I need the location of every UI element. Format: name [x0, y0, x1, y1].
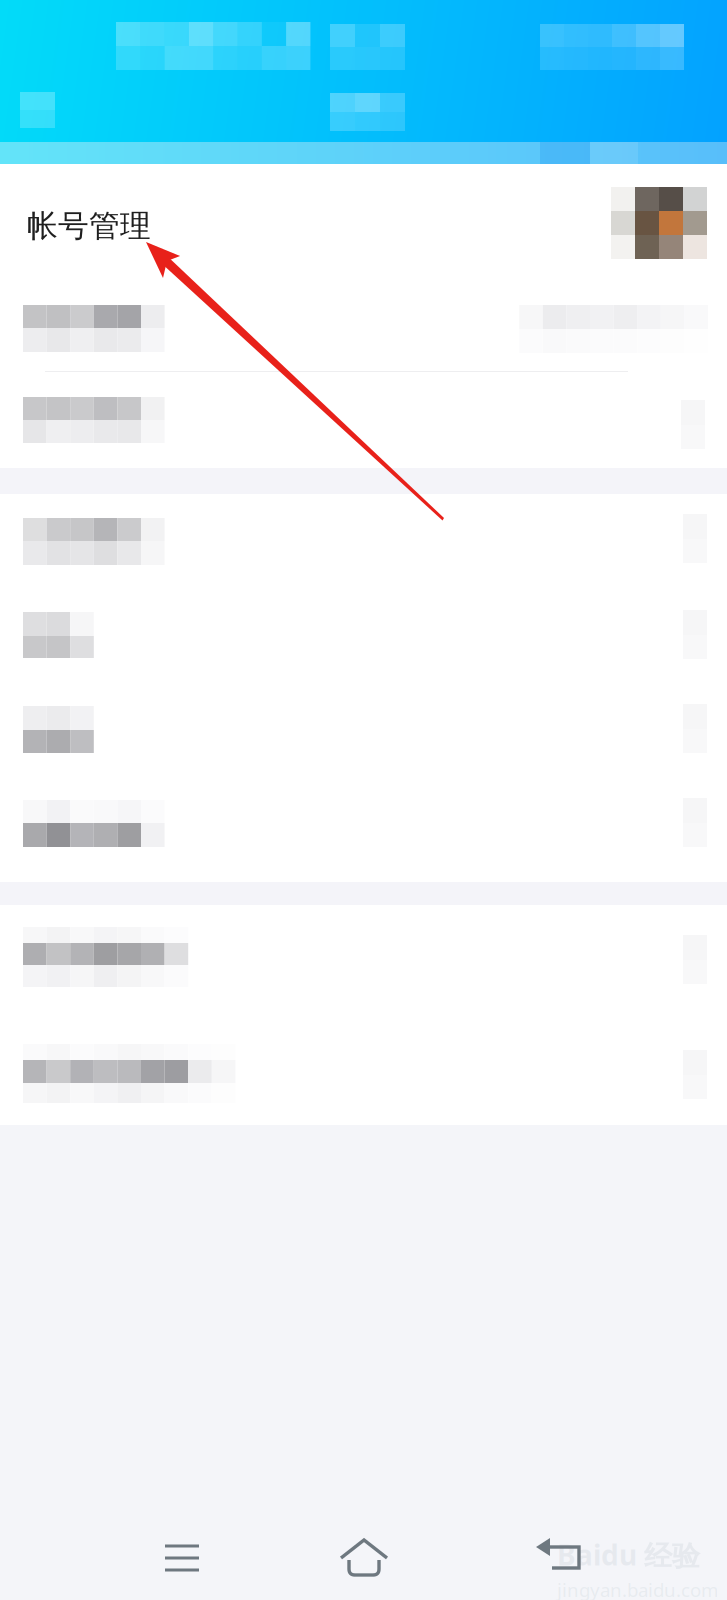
- button[interactable]: [0, 776, 727, 882]
- button[interactable]: Home: [324, 1518, 404, 1598]
- button[interactable]: [0, 1022, 727, 1125]
- staticText: 帐号管理: [27, 207, 151, 245]
- button[interactable]: [0, 282, 727, 371]
- button[interactable]: [0, 588, 727, 682]
- button[interactable]: [0, 372, 727, 468]
- button[interactable]: Back: [524, 1518, 604, 1598]
- button[interactable]: [0, 494, 727, 588]
- staticText: Baidu 经验: [557, 1536, 700, 1573]
- button[interactable]: Recent apps: [142, 1518, 222, 1598]
- button[interactable]: [0, 682, 727, 776]
- button[interactable]: Profile photo: [611, 187, 707, 259]
- button[interactable]: [0, 905, 727, 1022]
- staticText: jingyan.baidu.com: [557, 1577, 718, 1600]
